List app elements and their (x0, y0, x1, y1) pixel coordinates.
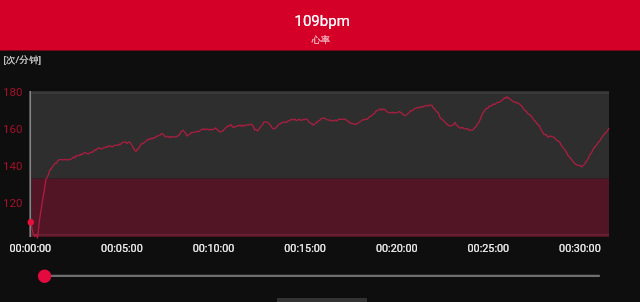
button[interactable]: Heart rate chart (0, 0, 640, 302)
